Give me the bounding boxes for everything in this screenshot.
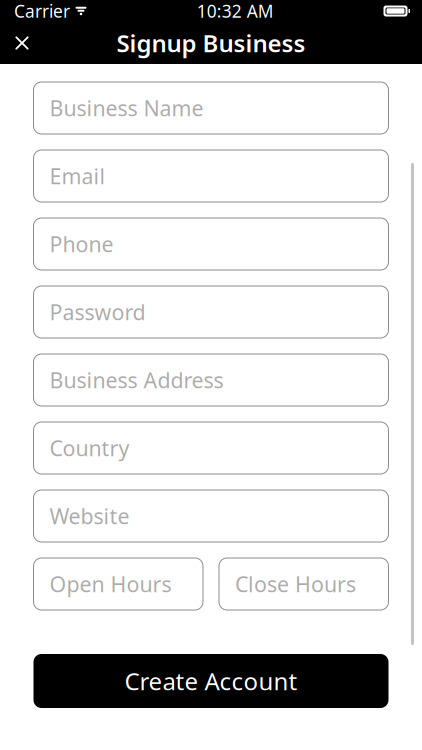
staticText: Open Hours (49, 570, 171, 598)
staticText: Phone (49, 230, 113, 258)
staticText: 10:32 AM (197, 0, 274, 22)
staticText: Business Address (49, 366, 223, 394)
button[interactable]: Email (33, 150, 388, 202)
staticText: Country (49, 434, 129, 462)
staticText: Signup Business (116, 27, 305, 59)
button[interactable]: Business Address (33, 354, 388, 406)
button[interactable]: Password (33, 286, 388, 338)
button[interactable]: Open Hours (33, 558, 203, 610)
staticText: Close Hours (235, 570, 356, 598)
button[interactable]: Close (0, 22, 44, 64)
button[interactable]: Close Hours (219, 558, 388, 610)
staticText: Email (49, 162, 105, 190)
staticText: Website (49, 502, 129, 530)
button[interactable]: Website (33, 490, 388, 542)
button[interactable]: Phone (33, 218, 388, 270)
staticText: Password (49, 298, 145, 326)
staticText: Business Name (49, 94, 203, 122)
button[interactable]: Business Name (33, 82, 388, 134)
staticText: Carrier (14, 0, 70, 22)
staticText: Create Account (124, 665, 297, 697)
button[interactable]: Country (33, 422, 388, 474)
button[interactable]: Create Account (33, 654, 388, 708)
